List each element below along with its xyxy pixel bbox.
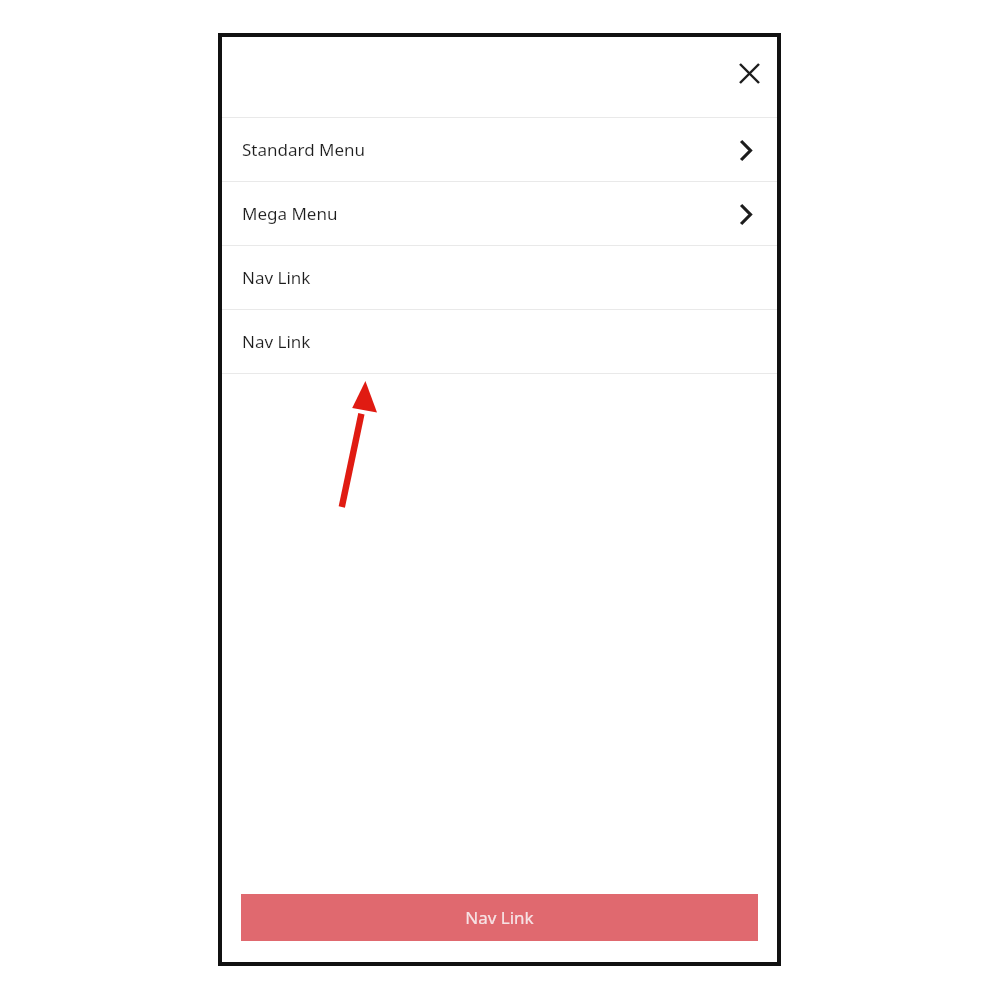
button[interactable]: Nav Link xyxy=(222,310,777,373)
button[interactable]: Standard Menu xyxy=(222,118,777,181)
button[interactable]: Nav Link xyxy=(222,246,777,309)
staticText: Mega Menu xyxy=(242,202,338,225)
button[interactable]: Nav Link xyxy=(241,894,758,941)
staticText: Nav Link xyxy=(465,906,534,929)
button[interactable]: Close xyxy=(727,51,771,95)
staticText: Standard Menu xyxy=(242,138,366,161)
staticText: Nav Link xyxy=(242,330,311,353)
staticText: Nav Link xyxy=(242,266,311,289)
button[interactable]: Mega Menu xyxy=(222,182,777,245)
